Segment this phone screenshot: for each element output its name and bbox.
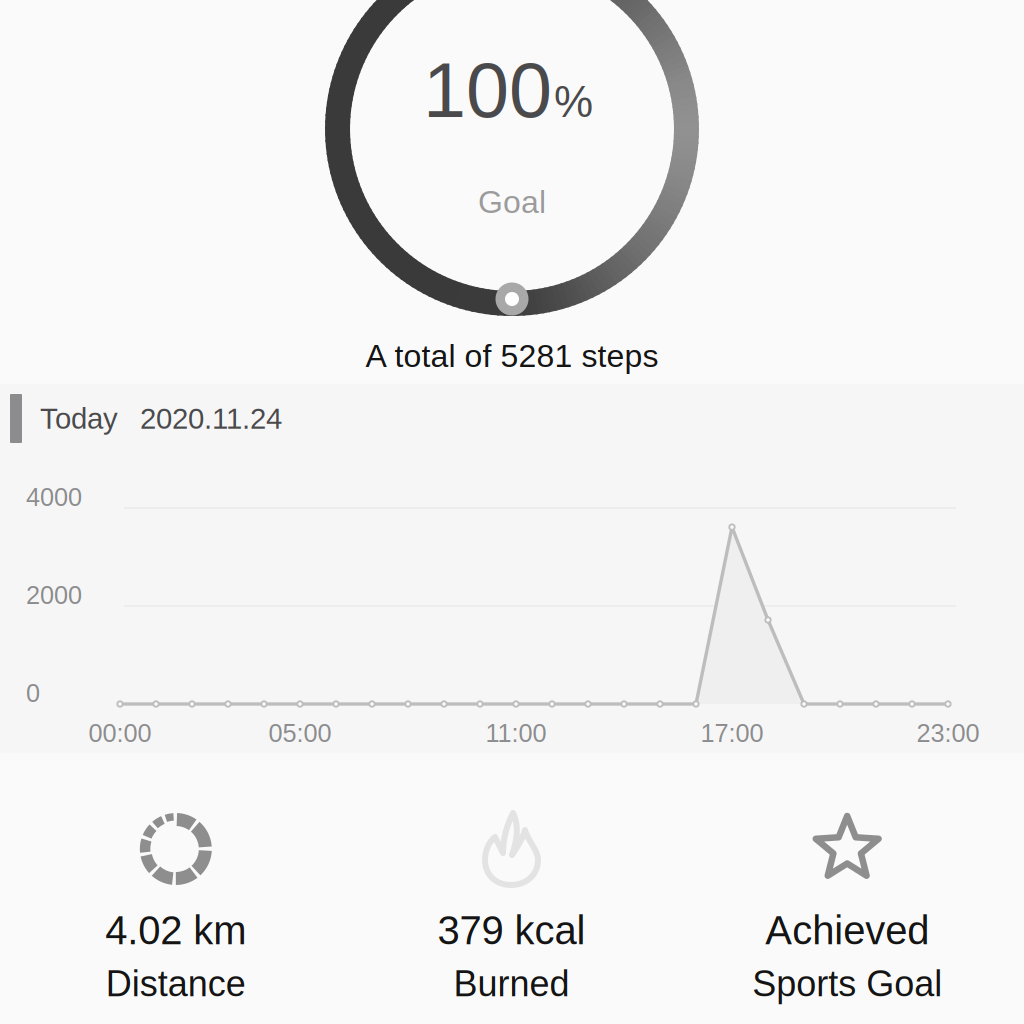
staticText: 17:00 <box>700 719 763 747</box>
staticText: 0 <box>26 679 40 707</box>
staticText: 2000 <box>26 581 82 609</box>
staticText: Achieved <box>765 908 929 953</box>
staticText: A total of 5281 steps <box>365 338 658 374</box>
staticText: 00:00 <box>88 719 151 747</box>
staticText: 11:00 <box>485 719 546 747</box>
staticText: 379 kcal <box>437 908 585 953</box>
button[interactable]: 4.02 km <box>8 810 344 1024</box>
staticText: Today <box>40 402 118 435</box>
button[interactable]: Achieved <box>679 810 1015 1024</box>
staticText: 2020.11.24 <box>140 402 282 435</box>
staticText: 100 <box>423 47 552 133</box>
staticText: 4000 <box>26 483 82 511</box>
staticText: 4.02 km <box>105 908 246 953</box>
staticText: % <box>554 77 593 126</box>
staticText: Distance <box>106 964 246 1004</box>
staticText: Burned <box>453 964 569 1004</box>
staticText: 05:00 <box>268 719 331 747</box>
button[interactable]: 379 kcal <box>344 810 679 1024</box>
staticText: Sports Goal <box>752 964 942 1004</box>
staticText: 23:00 <box>916 719 979 747</box>
staticText: Goal <box>478 184 546 220</box>
